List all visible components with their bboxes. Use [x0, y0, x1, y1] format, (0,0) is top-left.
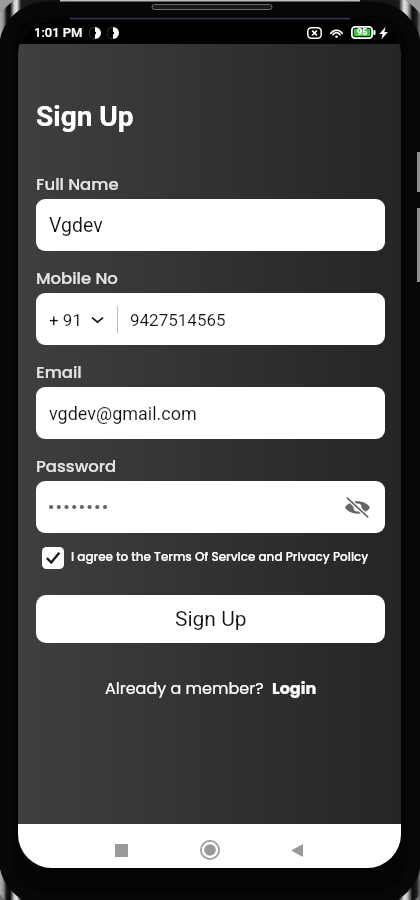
- staticText: Full Name: [36, 173, 119, 196]
- staticText: Email: [36, 361, 82, 384]
- button[interactable]: [36, 481, 385, 533]
- staticText: + 91: [49, 310, 82, 330]
- staticText: 9427514565: [130, 310, 226, 330]
- staticText: Already a member?: [105, 677, 264, 699]
- staticText: 95: [357, 27, 368, 38]
- button[interactable]: Sign Up: [36, 595, 385, 643]
- button[interactable]: Home: [188, 828, 232, 868]
- staticText: Sign Up: [175, 607, 247, 632]
- button[interactable]: Login: [272, 677, 317, 699]
- staticText: vgdev@gmail.com: [49, 403, 197, 424]
- button[interactable]: Back: [275, 828, 319, 868]
- button[interactable]: Show password: [340, 490, 374, 524]
- staticText: 1:01 PM: [34, 25, 83, 40]
- button[interactable]: Recents: [99, 828, 143, 868]
- button[interactable]: + 91: [36, 293, 385, 345]
- staticText: Vgdev: [49, 214, 103, 237]
- staticText: Sign Up: [36, 100, 134, 133]
- button[interactable]: I agree to the Terms Of Service and Priv…: [42, 547, 369, 569]
- staticText: Mobile No: [36, 267, 118, 290]
- staticText: I agree to the Terms Of Service and Priv…: [71, 548, 369, 565]
- staticText: Password: [36, 455, 117, 478]
- button[interactable]: Vgdev: [36, 199, 385, 251]
- button[interactable]: vgdev@gmail.com: [36, 387, 385, 439]
